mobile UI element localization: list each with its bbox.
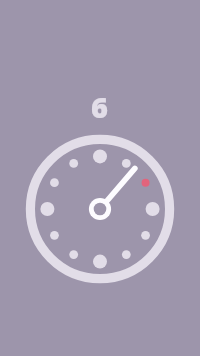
button[interactable]: 6 (91, 87, 108, 126)
button[interactable]: Analogue clock dial (25, 134, 175, 284)
staticText: 6 (91, 87, 108, 126)
